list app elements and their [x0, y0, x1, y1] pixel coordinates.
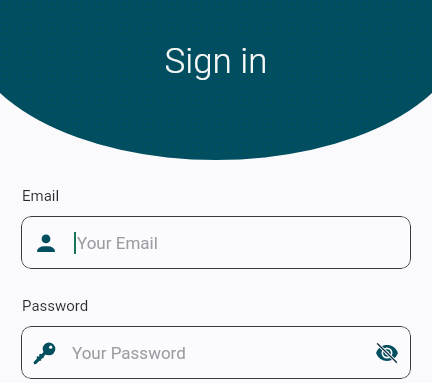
- staticText: Password: [22, 297, 89, 315]
- button[interactable]: Your Email: [21, 216, 411, 269]
- staticText: Your Password: [72, 343, 186, 363]
- button[interactable]: Show password: [373, 339, 401, 367]
- staticText: Your Email: [77, 233, 158, 253]
- button[interactable]: Your Password: [21, 326, 411, 379]
- staticText: Sign in: [0, 41, 432, 82]
- staticText: Email: [22, 187, 60, 205]
